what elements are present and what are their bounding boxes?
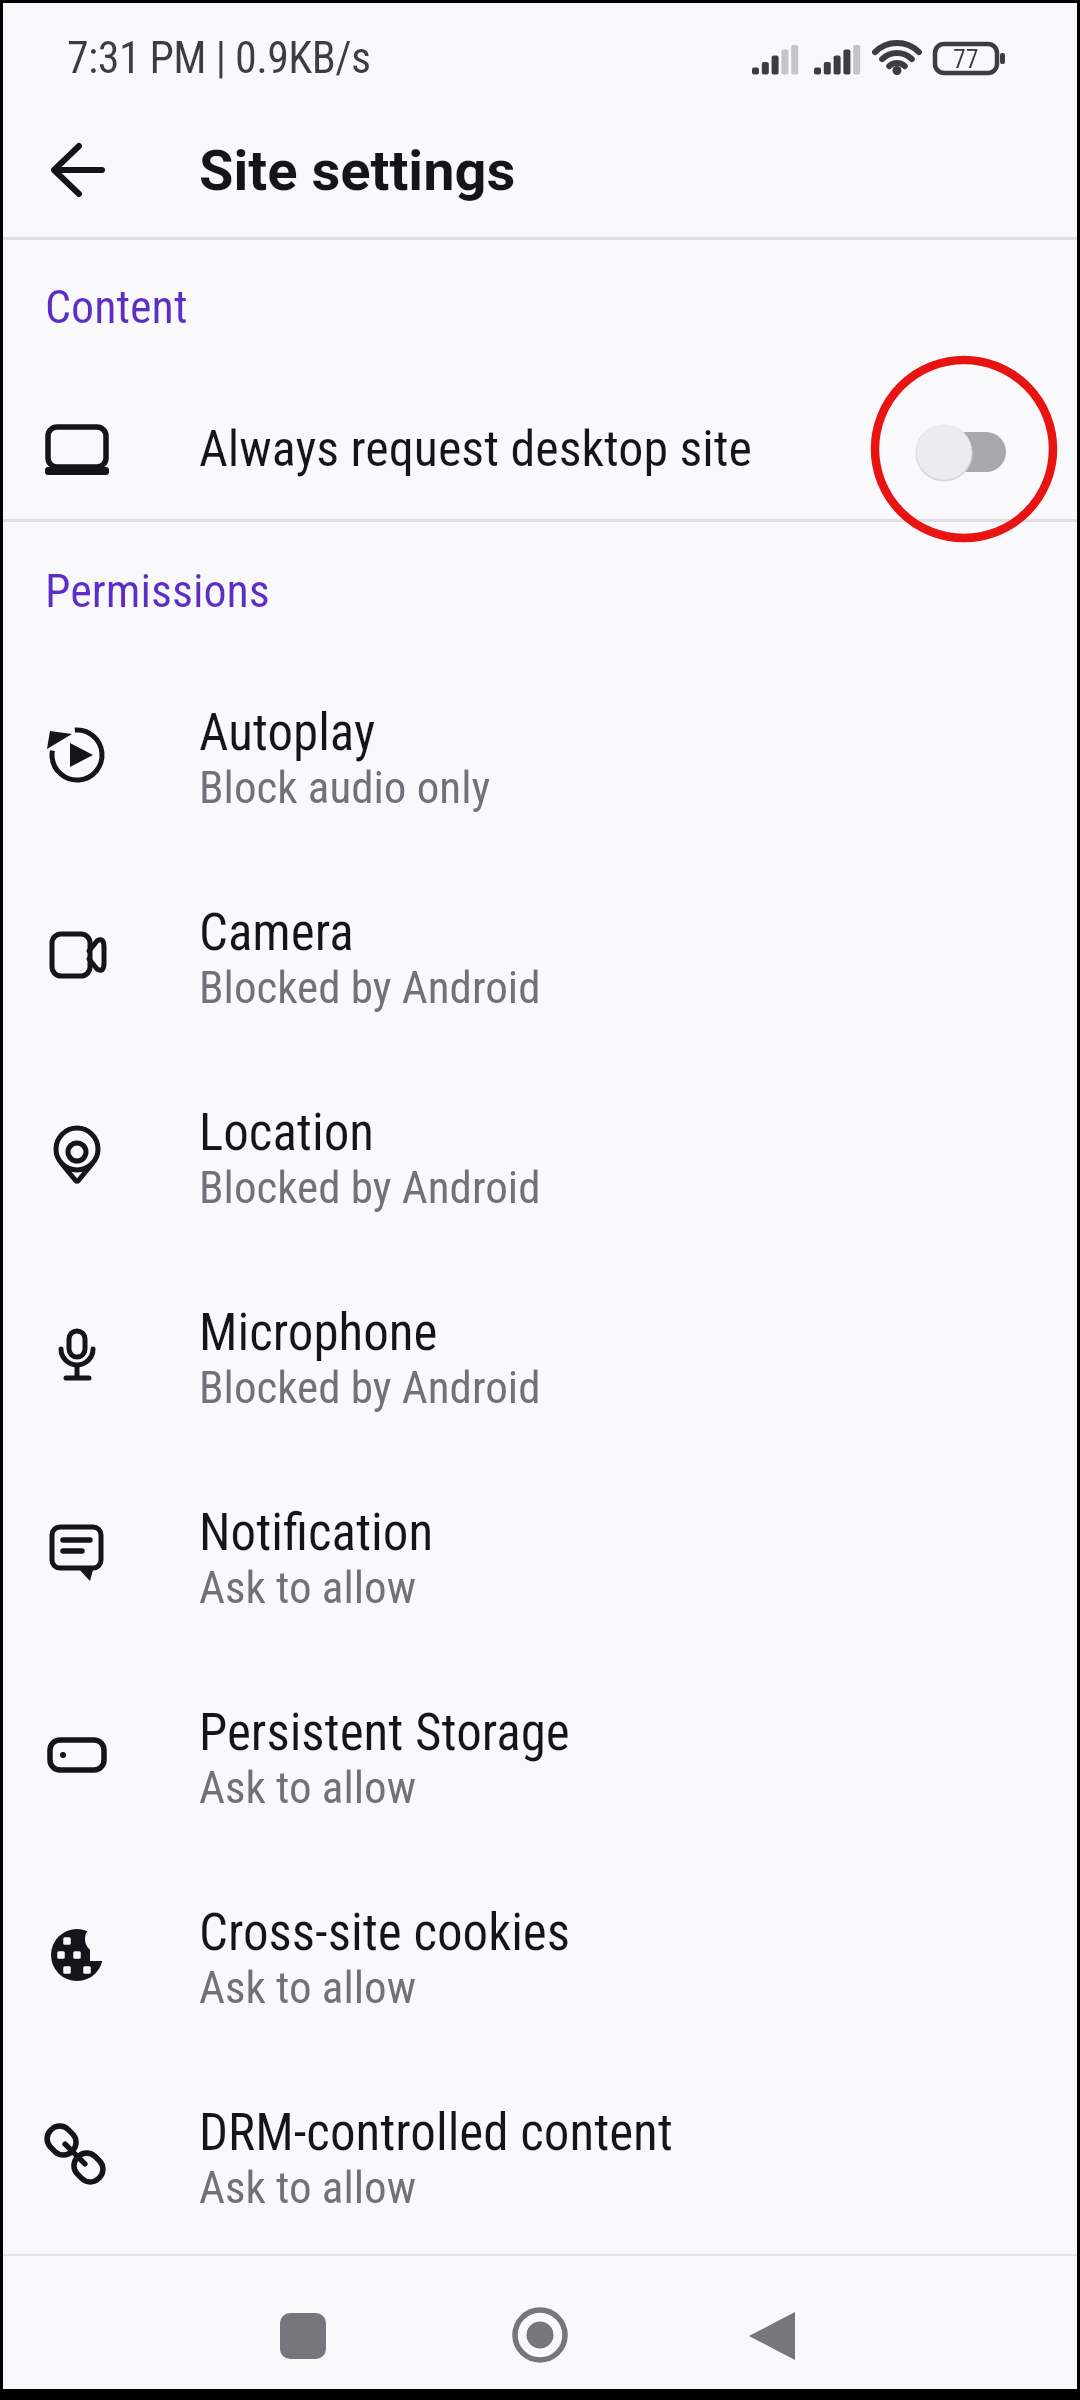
- staticText: Notification: [199, 1503, 434, 1563]
- staticText: Content: [45, 280, 188, 334]
- staticText: Location: [199, 1103, 374, 1163]
- button[interactable]: [492, 2290, 588, 2382]
- button[interactable]: [30, 130, 120, 210]
- button[interactable]: [726, 2290, 822, 2382]
- staticText: Blocked by Android: [199, 1361, 541, 1414]
- staticText: 7:31 PM | 0.9KB/s: [67, 32, 371, 84]
- button[interactable]: [3, 1490, 1077, 1680]
- staticText: Permissions: [45, 564, 270, 618]
- staticText: Microphone: [199, 1303, 438, 1363]
- staticText: Autoplay: [199, 703, 376, 763]
- staticText: Blocked by Android: [199, 961, 541, 1014]
- button[interactable]: [3, 1890, 1077, 2080]
- staticText: Camera: [199, 903, 354, 963]
- staticText: Ask to allow: [199, 1561, 416, 1614]
- button[interactable]: [3, 1690, 1077, 1880]
- button[interactable]: [255, 2290, 351, 2382]
- staticText: Block audio only: [199, 761, 491, 814]
- button[interactable]: [3, 890, 1077, 1080]
- staticText: Blocked by Android: [199, 1161, 541, 1214]
- staticText: 77: [953, 44, 979, 74]
- staticText: Ask to allow: [199, 1961, 416, 2014]
- staticText: Always request desktop site: [199, 420, 753, 479]
- button[interactable]: [3, 690, 1077, 880]
- button[interactable]: [3, 1090, 1077, 1280]
- staticText: DRM-controlled content: [199, 2103, 673, 2163]
- button[interactable]: [3, 380, 1077, 520]
- staticText: Site settings: [199, 138, 516, 204]
- staticText: Ask to allow: [199, 2161, 416, 2214]
- button[interactable]: [3, 2090, 1077, 2280]
- staticText: Ask to allow: [199, 1761, 416, 1814]
- staticText: Cross-site cookies: [199, 1903, 570, 1963]
- staticText: Persistent Storage: [199, 1703, 570, 1763]
- button[interactable]: [3, 1290, 1077, 1480]
